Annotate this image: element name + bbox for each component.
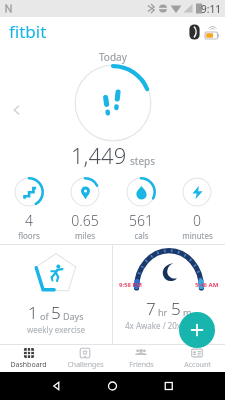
staticText: 5:46 AM (195, 281, 219, 289)
button[interactable]: Challenges (57, 345, 113, 372)
staticText: Account (184, 360, 211, 370)
staticText: 0 (193, 211, 201, 230)
button[interactable] (74, 64, 152, 142)
staticText: miles (75, 230, 95, 241)
button[interactable]: Dashboard (0, 345, 57, 372)
staticText: fitbit (9, 20, 47, 43)
staticText: 9:11 (201, 2, 221, 16)
staticText: floors (18, 230, 40, 241)
staticText: Friends (129, 360, 154, 370)
button[interactable]: 4 (0, 174, 57, 244)
staticText: 4 (25, 211, 33, 230)
button[interactable]: Add (179, 312, 215, 348)
staticText: 1,449 (71, 140, 127, 170)
button[interactable]: 0 (169, 174, 225, 244)
button[interactable]: Account (169, 345, 225, 372)
staticText: 5 (171, 297, 181, 320)
button[interactable]: 9:58 PM (113, 245, 225, 344)
staticText: steps (130, 154, 155, 168)
button[interactable]: Friends (113, 345, 169, 372)
staticText: cals (134, 230, 149, 241)
staticText: 5 (51, 301, 61, 324)
staticText: hr (158, 306, 168, 318)
staticText: m (183, 306, 192, 318)
staticText: Dashboard (10, 360, 47, 370)
button[interactable]: 0.65 (57, 174, 113, 244)
staticText: 561 (129, 211, 153, 230)
staticText: weekly exercise (27, 324, 86, 335)
button[interactable]: 561 (113, 174, 169, 244)
staticText: 9:58 PM (119, 281, 142, 289)
staticText: 4x Awake / 20x Restless (125, 320, 214, 331)
button[interactable]: Device battery (187, 22, 219, 42)
staticText: Days (63, 310, 84, 322)
staticText: minutes (182, 230, 213, 241)
button[interactable]: 1 (0, 245, 112, 344)
staticText: Today (99, 50, 127, 64)
staticText: Challenges (67, 360, 104, 370)
staticText: 1 (28, 301, 38, 324)
button[interactable]: Previous day (10, 103, 24, 117)
staticText: 0.65 (71, 211, 99, 230)
staticText: 7 (146, 297, 156, 320)
staticText: of (40, 310, 49, 322)
